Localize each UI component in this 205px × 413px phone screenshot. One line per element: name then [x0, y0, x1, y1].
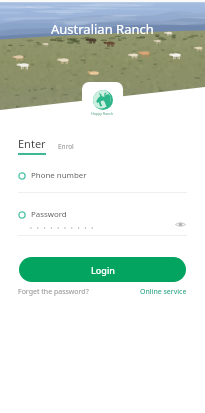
staticText: Enter: [18, 136, 46, 151]
staticText: Happy Ranch: [91, 111, 114, 116]
staticText: Phone number: [31, 170, 87, 181]
staticText: Online service: [140, 287, 187, 297]
button[interactable]: Enrol: [58, 142, 74, 155]
button[interactable]: Online service: [140, 287, 187, 297]
staticText: Forget the password?: [18, 287, 89, 297]
button[interactable]: Forget the password?: [18, 287, 89, 297]
button[interactable]: Login: [19, 257, 186, 282]
button[interactable]: Enter: [18, 136, 46, 155]
staticText: Password: [31, 209, 67, 220]
staticText: Australian Ranch: [51, 20, 154, 38]
button[interactable]: Show password: [174, 218, 187, 231]
staticText: Login: [91, 264, 115, 276]
staticText: Enrol: [58, 142, 74, 151]
